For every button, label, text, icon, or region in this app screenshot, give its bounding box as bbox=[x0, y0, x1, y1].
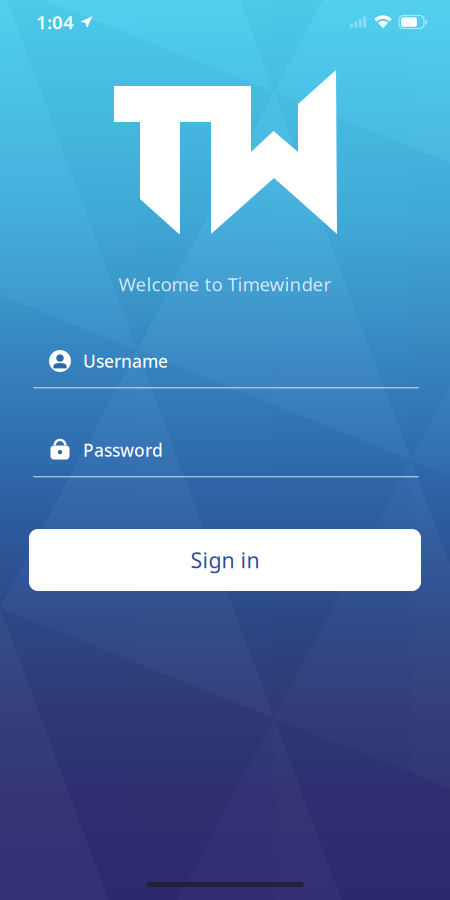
staticText: 1:04 bbox=[36, 10, 74, 34]
staticText: Password bbox=[83, 438, 163, 461]
button[interactable]: Password bbox=[33, 433, 419, 479]
button[interactable]: Sign in bbox=[29, 529, 421, 591]
button[interactable]: Username bbox=[33, 344, 419, 390]
staticText: Username bbox=[83, 349, 168, 372]
staticText: Welcome to Timewinder bbox=[118, 272, 331, 296]
staticText: Sign in bbox=[190, 546, 259, 574]
